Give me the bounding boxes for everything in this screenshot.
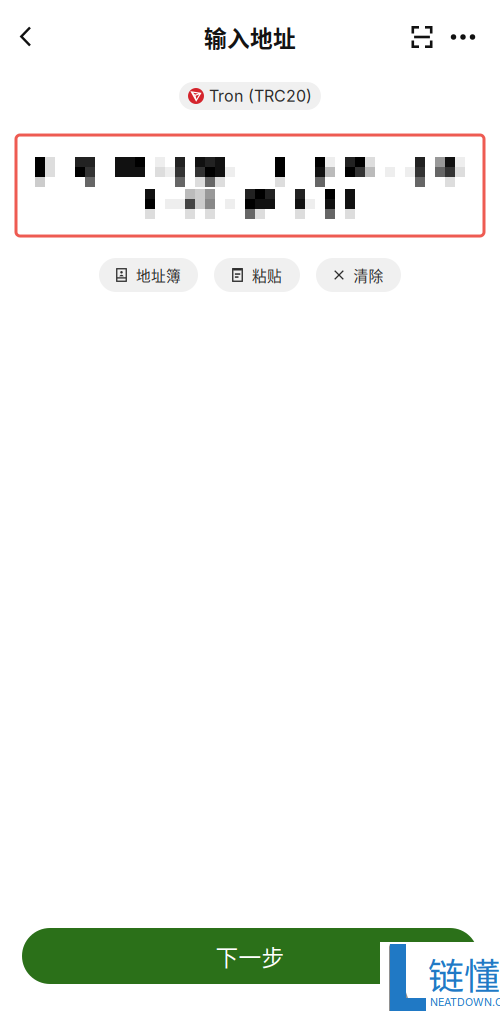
staticText: 下一步 [215,940,284,972]
staticText: 地址簿 [136,264,181,286]
staticText: Tron (TRC20) [209,86,312,106]
button[interactable]: 下一步 [22,928,478,984]
button[interactable]: 粘贴 [214,258,300,292]
button[interactable]: Scan QR code [400,0,444,74]
button[interactable]: Tron (TRC20) [179,82,321,110]
button[interactable]: 清除 [316,258,401,292]
staticText: NEATDOWN.COM [430,995,500,1008]
button[interactable]: More options [444,0,482,74]
staticText: 粘贴 [252,264,282,286]
staticText: 输入地址 [204,21,296,53]
staticText: 清除 [353,264,383,286]
button[interactable]: Back [0,0,52,74]
button[interactable]: 地址簿 [99,258,198,292]
staticText: 链懂 [428,948,500,1000]
